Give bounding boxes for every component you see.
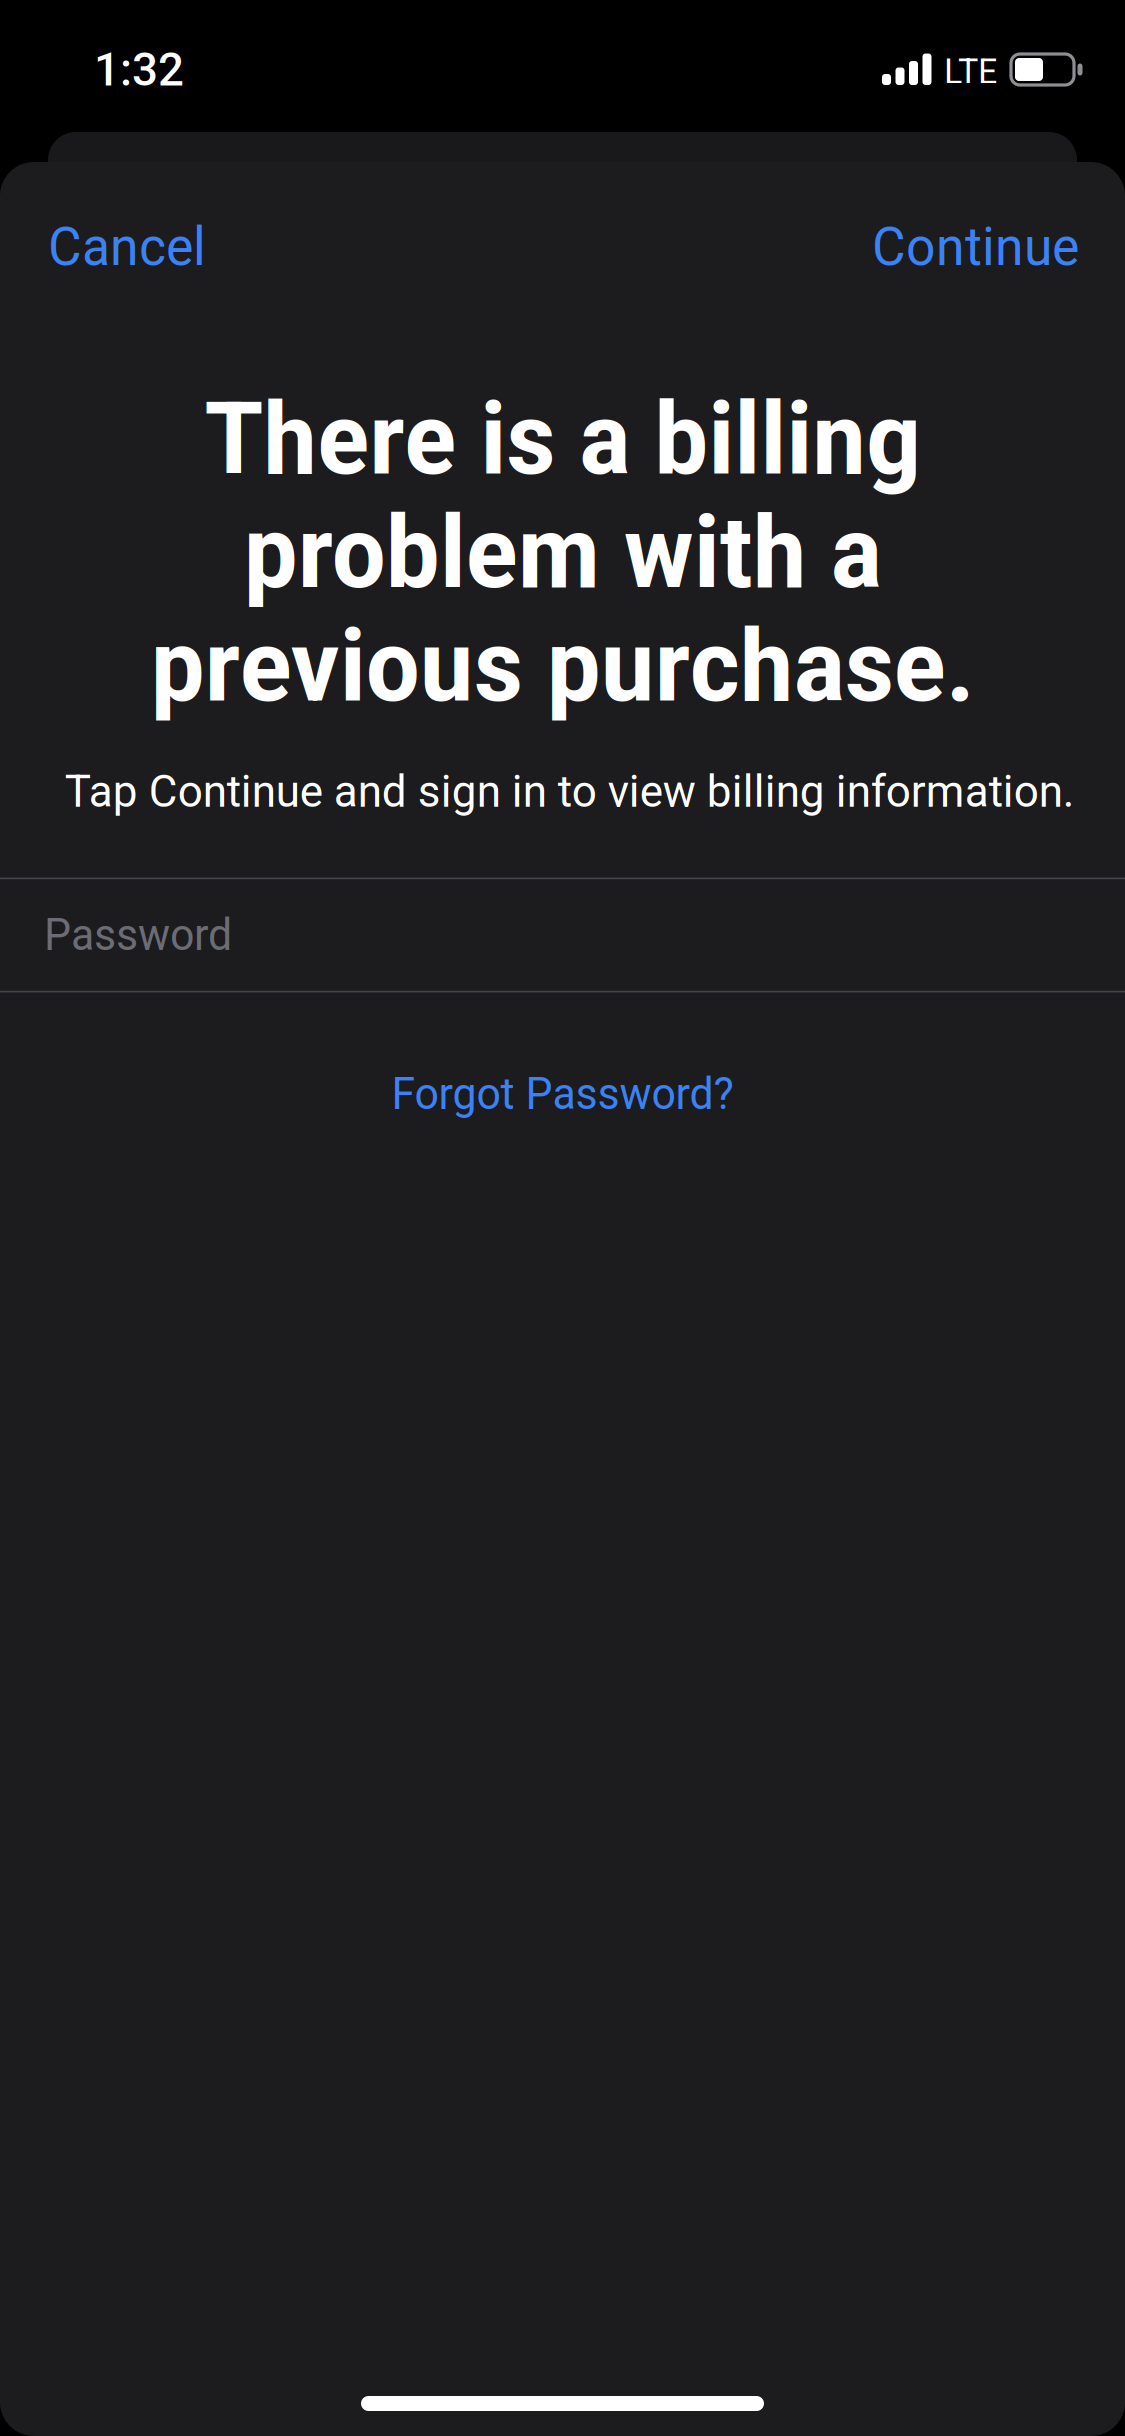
staticText: LTE bbox=[944, 51, 997, 92]
button[interactable]: Forgot Password? bbox=[351, 1044, 773, 1144]
staticText: Forgot Password? bbox=[391, 1068, 733, 1120]
staticText: Tap Continue and sign in to view billing… bbox=[64, 766, 1074, 818]
staticText: Continue bbox=[872, 216, 1079, 278]
staticText: Password bbox=[44, 909, 232, 961]
staticText: Cancel bbox=[48, 216, 206, 278]
staticText: 1:32 bbox=[94, 43, 184, 97]
staticText: There is a billing problem with a previo… bbox=[150, 380, 974, 725]
button[interactable]: Cancel bbox=[0, 192, 238, 302]
button[interactable]: Continue bbox=[840, 192, 1125, 302]
button[interactable]: Password bbox=[0, 878, 1125, 992]
